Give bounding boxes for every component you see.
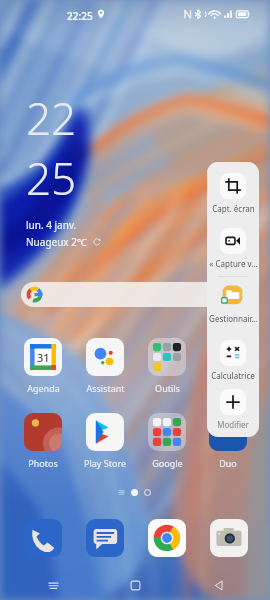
button[interactable]: Duo — [199, 413, 257, 469]
staticText: 22:25 — [67, 9, 93, 23]
staticText: Agenda — [27, 382, 60, 394]
staticText: Outils — [155, 382, 180, 394]
staticText: Photos — [28, 457, 58, 469]
staticText: Calculatrice — [211, 370, 255, 381]
button[interactable]: Capt. écran — [207, 173, 259, 214]
staticText: lun. 4 janv. — [26, 218, 77, 232]
button[interactable]: Outils — [138, 338, 196, 394]
button[interactable]: Camera — [210, 519, 248, 557]
button[interactable] — [21, 282, 249, 307]
staticText: Play Store — [84, 457, 126, 469]
staticText: « Capture v… — [209, 258, 258, 269]
staticText: Google — [152, 457, 183, 469]
button[interactable]: Chrome — [148, 519, 186, 557]
button[interactable]: Google — [138, 413, 196, 469]
staticText: 31 — [37, 350, 50, 365]
staticText: Duo — [219, 457, 237, 469]
staticText: Capt. écran — [212, 203, 255, 214]
button[interactable]: Phone — [24, 519, 62, 557]
button[interactable]: Home — [105, 570, 165, 600]
button[interactable]: « Capture v… — [207, 228, 259, 269]
staticText: Assistant — [86, 382, 125, 394]
button[interactable]: Photos — [14, 413, 72, 469]
staticText: 22 — [26, 88, 77, 148]
button[interactable]: Modifier — [207, 389, 259, 430]
button[interactable]: Messages — [86, 519, 124, 557]
button[interactable]: Assistant — [76, 338, 134, 394]
button[interactable]: Recents — [23, 570, 83, 600]
staticText: Gestionnair… — [209, 313, 258, 324]
staticText: 25 — [26, 148, 77, 208]
button[interactable]: 31 — [14, 338, 72, 394]
staticText: Modifier — [217, 419, 249, 430]
button[interactable]: Play Store — [76, 413, 134, 469]
staticText: Duo — [219, 382, 237, 394]
button[interactable]: Gestionnair… — [207, 283, 259, 324]
button[interactable]: Duo — [199, 338, 257, 394]
button[interactable]: Back — [188, 570, 248, 600]
staticText: Nuageux 2℃ — [26, 235, 87, 249]
button[interactable]: Calculatrice — [207, 340, 259, 381]
